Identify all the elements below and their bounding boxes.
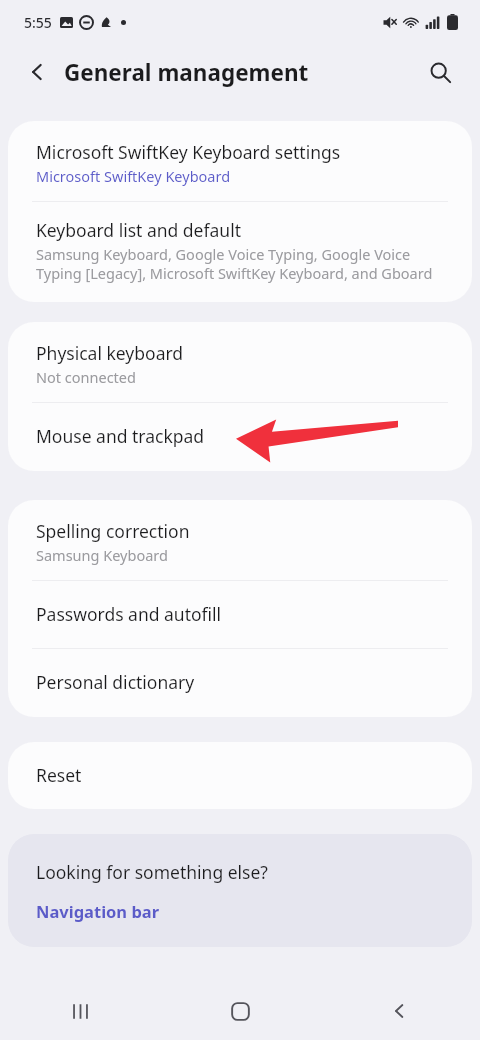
staticText: Personal dictionary	[36, 670, 195, 694]
staticText: Keyboard list and default	[36, 218, 241, 242]
button[interactable]: Recents	[56, 987, 104, 1035]
button[interactable]: Personal dictionary	[8, 649, 472, 717]
staticText: Mouse and trackpad	[36, 424, 205, 448]
staticText: Passwords and autofill	[36, 602, 222, 626]
staticText: Microsoft SwiftKey Keyboard settings	[36, 140, 341, 164]
button[interactable]: Home	[216, 987, 264, 1035]
button[interactable]: Spelling correction	[8, 500, 472, 580]
staticText: Not connected	[36, 367, 136, 387]
staticText: 5:55	[24, 13, 52, 32]
button[interactable]: Back	[376, 987, 424, 1035]
staticText: Looking for something else?	[36, 860, 268, 884]
button[interactable]: Physical keyboard	[8, 322, 472, 402]
staticText: Microsoft SwiftKey Keyboard	[36, 166, 231, 186]
button[interactable]: Reset	[8, 742, 472, 809]
button[interactable]: Microsoft SwiftKey Keyboard settings	[8, 121, 472, 201]
staticText: Samsung Keyboard	[36, 545, 168, 565]
button[interactable]: Back	[18, 52, 58, 92]
staticText: Spelling correction	[36, 519, 190, 543]
staticText: Physical keyboard	[36, 341, 184, 365]
button[interactable]: Looking for something else?	[8, 834, 472, 947]
button[interactable]: Search	[419, 51, 461, 93]
button[interactable]: Mouse and trackpad	[8, 403, 472, 471]
staticText: Reset	[36, 763, 82, 787]
staticText: General management	[64, 57, 309, 88]
button[interactable]: Passwords and autofill	[8, 581, 472, 648]
staticText: Navigation bar	[36, 900, 160, 922]
button[interactable]: Keyboard list and default	[8, 202, 472, 302]
staticText: Samsung Keyboard, Google Voice Typing, G…	[36, 244, 448, 284]
